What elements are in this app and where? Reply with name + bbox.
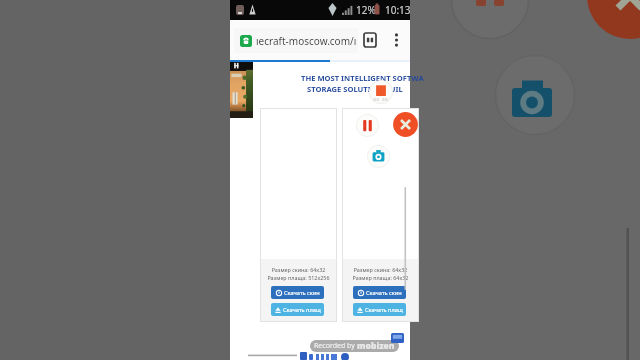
button[interactable]: Pause recording xyxy=(356,114,379,137)
staticText: mobizen xyxy=(357,340,395,352)
staticText: Размер плаща: 64x32 xyxy=(342,274,419,281)
button[interactable]: Close recorder xyxy=(393,112,418,137)
staticText: ıecraft-moscow.com/ı xyxy=(256,34,357,48)
staticText: Скачать скин xyxy=(366,289,402,297)
button[interactable]: Скачать плащ xyxy=(353,303,406,316)
button[interactable]: Скачать плащ xyxy=(271,303,324,316)
staticText: Скачать плащ xyxy=(283,306,321,314)
staticText: Размер плаща: 512x256 xyxy=(260,274,337,281)
button[interactable]: Скачать скин xyxy=(271,286,324,299)
button[interactable]: Скачать скин xyxy=(353,286,406,299)
button[interactable]: More options xyxy=(386,30,406,50)
staticText: Скачать плащ xyxy=(365,306,403,314)
staticText: Recorded by xyxy=(314,341,355,351)
button[interactable]: Tabs xyxy=(360,29,380,51)
staticText: Размер скина: 64x32 xyxy=(260,266,337,273)
staticText: 10:13 xyxy=(385,3,411,17)
button[interactable]: ıecraft-moscow.com/ı xyxy=(234,28,358,53)
staticText: Скачать скин xyxy=(284,289,320,297)
button[interactable]: Stop recording xyxy=(369,80,393,104)
button[interactable]: Capture screenshot xyxy=(367,145,390,168)
staticText: THE MOST INTELLIGENT SOFTWA xyxy=(301,73,424,83)
staticText: 12% xyxy=(356,3,376,17)
staticText: Размер скина: 64x32 xyxy=(342,266,419,273)
staticText: STORAGE SOLUTION BUIL xyxy=(307,84,403,94)
